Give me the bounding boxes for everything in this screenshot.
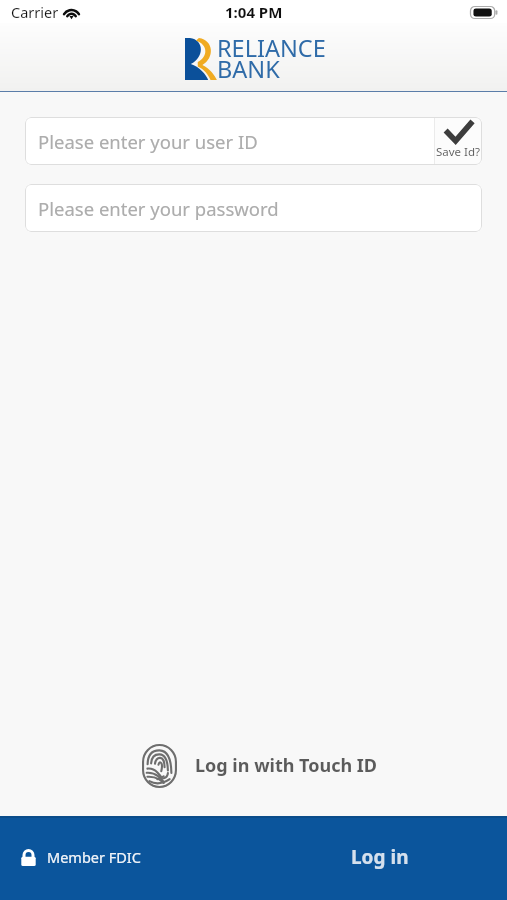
staticText: Member FDIC <box>47 847 141 867</box>
staticText: Save Id? <box>436 144 481 160</box>
staticText: RELIANCE <box>217 32 326 64</box>
button[interactable]: Member FDIC <box>21 847 141 867</box>
staticText: Log in with Touch ID <box>195 753 378 778</box>
staticText: Log in <box>351 844 409 870</box>
button[interactable]: Save Id <box>435 117 482 165</box>
button[interactable]: Log in <box>351 844 409 870</box>
staticText: BANK <box>217 53 280 85</box>
staticText: Please enter your password <box>38 196 279 221</box>
button[interactable]: Log in with Touch ID <box>142 744 378 788</box>
button[interactable]: Please enter your password <box>25 184 482 232</box>
staticText: Please enter your user ID <box>38 129 258 154</box>
button[interactable]: Please enter your user ID <box>25 117 482 165</box>
staticText: 1:04 PM <box>225 2 283 22</box>
staticText: Carrier <box>11 2 59 22</box>
